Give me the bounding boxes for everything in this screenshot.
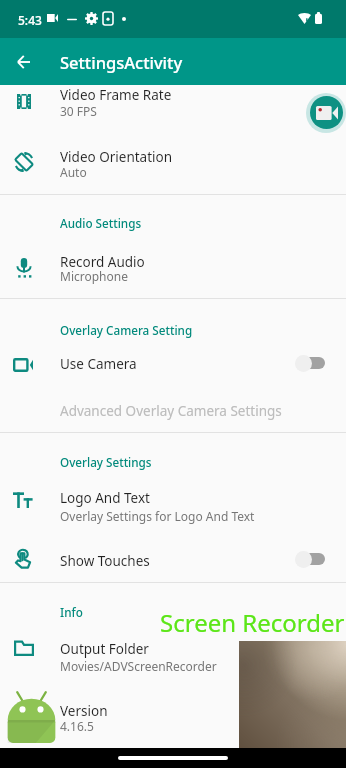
staticText: Video Orientation <box>60 148 173 166</box>
button[interactable]: Start recording <box>310 96 343 129</box>
staticText: Video Frame Rate <box>60 86 172 104</box>
staticText: Record Audio <box>60 253 145 271</box>
staticText: Overlay Settings <box>60 454 152 470</box>
button[interactable] <box>0 145 346 194</box>
staticText: SettingsActivity <box>60 51 183 73</box>
button[interactable]: Toggle <box>295 550 325 568</box>
staticText: 30 FPS <box>60 103 97 119</box>
button[interactable] <box>0 538 346 582</box>
staticText: 4.16.5 <box>60 718 94 734</box>
staticText: Version <box>60 702 108 720</box>
button[interactable] <box>0 84 346 194</box>
button[interactable] <box>0 630 346 678</box>
staticText: Microphone <box>60 268 128 284</box>
staticText: Info <box>60 604 83 620</box>
staticText: Overlay Settings for Logo And Text <box>60 508 255 524</box>
button[interactable] <box>0 688 346 744</box>
staticText: Use Camera <box>60 355 137 373</box>
staticText: Output Folder <box>60 640 149 658</box>
button[interactable]: Toggle <box>295 354 325 372</box>
button[interactable] <box>0 246 346 298</box>
staticText: 5:43 <box>18 12 42 28</box>
staticText: Overlay Camera Setting <box>60 322 193 338</box>
staticText: Show Touches <box>60 552 150 570</box>
button[interactable] <box>0 482 346 530</box>
staticText: Movies/ADVScreenRecorder <box>60 658 217 674</box>
staticText: Auto <box>60 164 87 180</box>
staticText: Screen Recorder <box>160 606 345 639</box>
button[interactable] <box>0 344 346 386</box>
staticText: Audio Settings <box>60 215 142 231</box>
staticText: Advanced Overlay Camera Settings <box>60 402 282 420</box>
button[interactable] <box>0 390 346 432</box>
staticText: Logo And Text <box>60 489 150 507</box>
button[interactable]: Back <box>0 38 47 85</box>
